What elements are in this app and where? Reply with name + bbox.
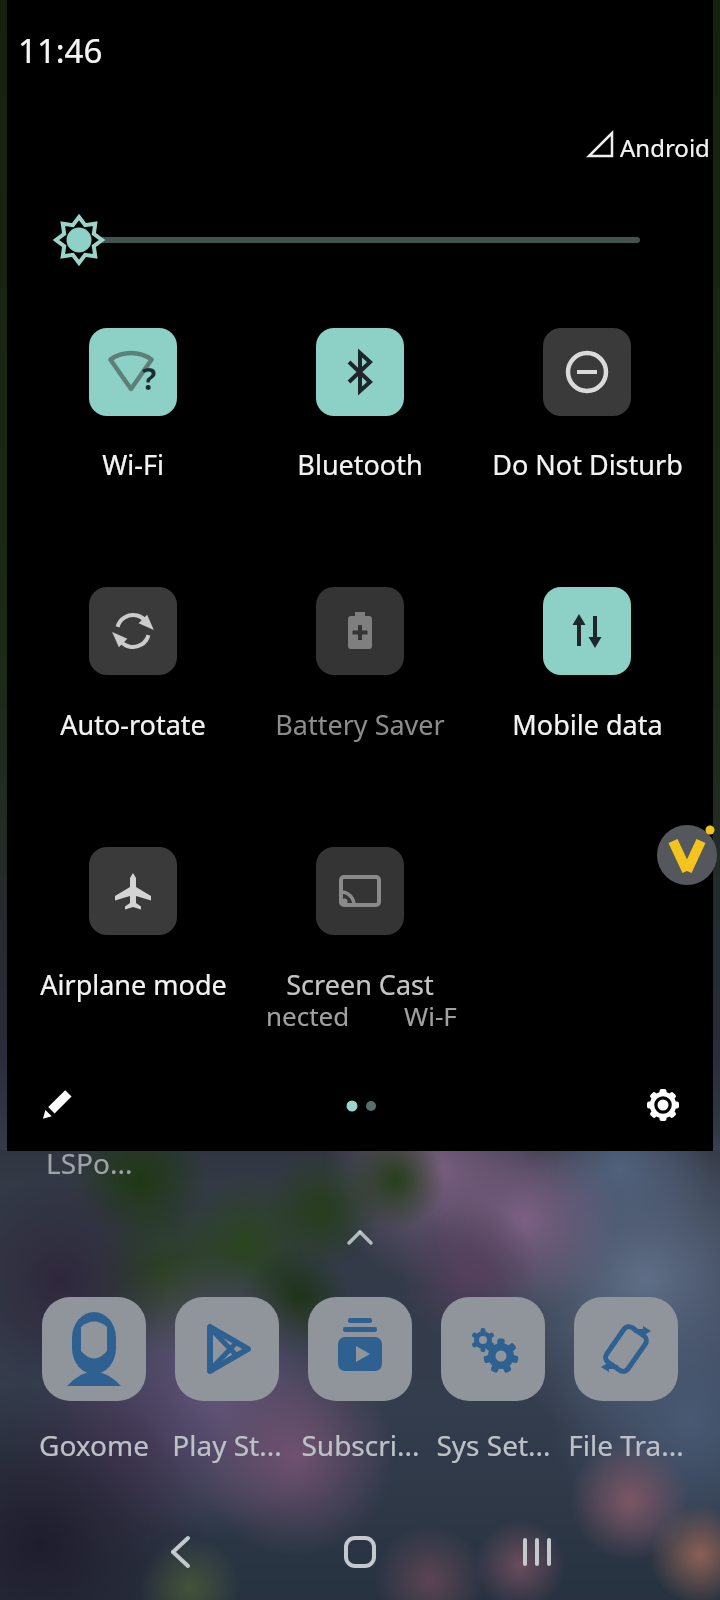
staticText: File Tra... (568, 1426, 684, 1464)
staticText: Bluetooth (297, 446, 423, 483)
staticText: Do Not Disturb (492, 446, 683, 483)
staticText: Auto-rotate (60, 706, 206, 743)
button[interactable] (89, 847, 177, 935)
staticText: nected (266, 998, 350, 1033)
staticText: Wi-F (404, 998, 457, 1033)
button[interactable] (150, 1520, 214, 1584)
staticText: LSPo... (46, 1144, 133, 1182)
staticText: Sys Set... (436, 1426, 551, 1464)
button[interactable] (441, 1297, 545, 1401)
button[interactable] (316, 847, 404, 935)
button[interactable] (543, 328, 631, 416)
button[interactable] (637, 1080, 689, 1132)
staticText: Goxome (39, 1426, 149, 1464)
button[interactable] (505, 1520, 569, 1584)
staticText: Mobile data (512, 706, 663, 743)
button[interactable] (657, 825, 717, 885)
button[interactable] (175, 1297, 279, 1401)
button[interactable] (574, 1297, 678, 1401)
staticText: Play St... (172, 1426, 282, 1464)
button[interactable] (89, 587, 177, 675)
staticText: Screen Cast (286, 966, 434, 1003)
staticText: Wi-Fi (102, 446, 164, 483)
button[interactable] (316, 328, 404, 416)
button[interactable] (543, 587, 631, 675)
button[interactable] (30, 1080, 82, 1132)
staticText: Battery Saver (275, 706, 445, 743)
staticText: ? (142, 358, 157, 399)
button[interactable] (308, 1297, 412, 1401)
button[interactable]: ? (89, 328, 177, 416)
button[interactable] (42, 1297, 146, 1401)
staticText: 11:46 (18, 28, 103, 73)
staticText: Android (620, 131, 710, 164)
button[interactable] (316, 587, 404, 675)
staticText: Subscri... (301, 1426, 420, 1464)
staticText: Airplane mode (40, 966, 227, 1003)
button[interactable] (328, 1520, 392, 1584)
